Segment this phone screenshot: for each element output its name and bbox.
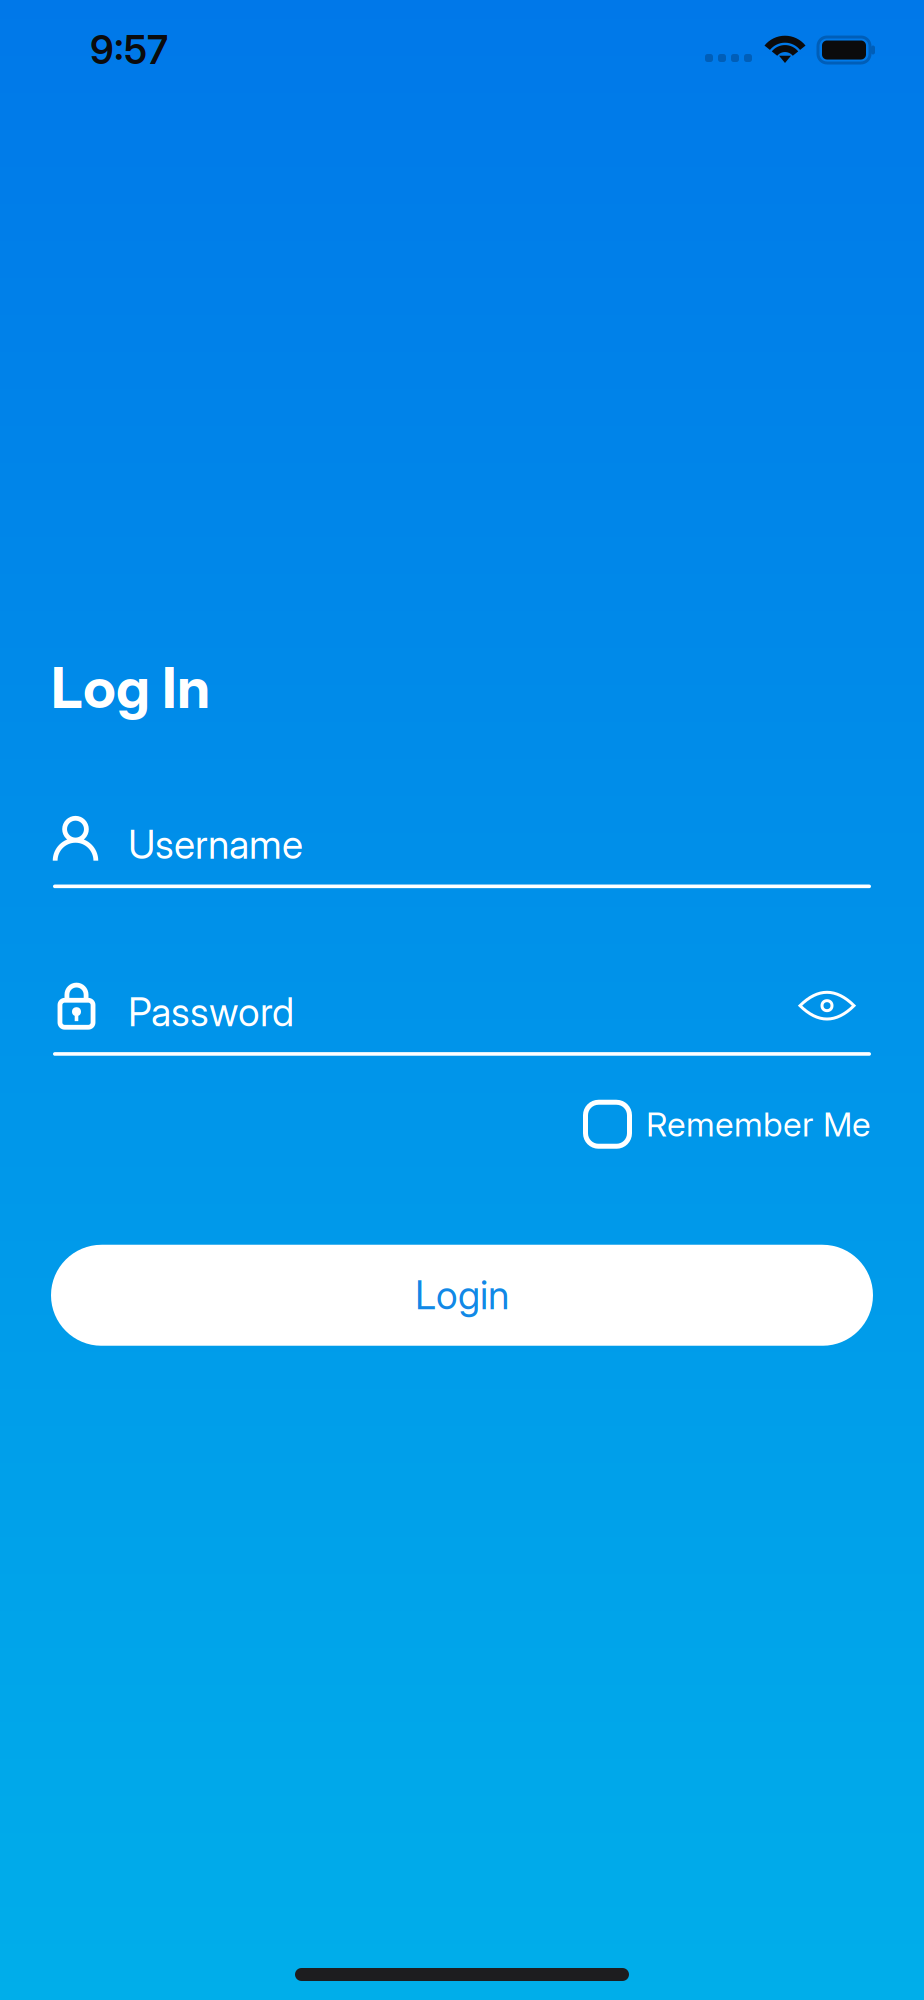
staticText: Username [128,821,303,868]
button[interactable]: Show password [801,981,873,1035]
staticText: Log In [51,653,210,722]
staticText: Login [415,1272,509,1319]
button[interactable]: Remember Me [579,1100,871,1149]
button[interactable]: Login [51,1245,873,1346]
button[interactable]: Password [51,981,801,1035]
staticText: 9:57 [90,27,168,73]
staticText: Password [128,989,294,1036]
button[interactable]: Username [51,814,873,868]
staticText: Remember Me [646,1104,871,1145]
